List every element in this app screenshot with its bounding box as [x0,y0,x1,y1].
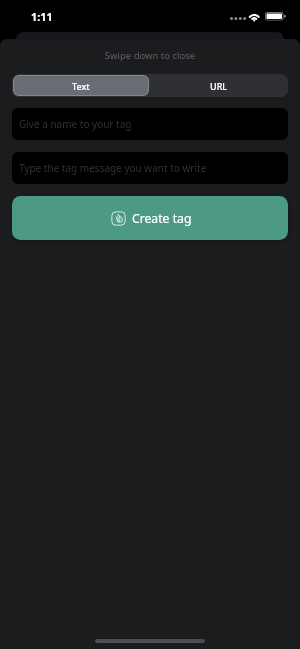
staticText: Create tag [132,210,192,227]
button[interactable]: Create tag [12,196,288,240]
staticText: Text [72,80,90,92]
staticText: Swipe down to close [0,49,300,62]
staticText: Type the tag message you want to write [19,161,207,175]
staticText: URL [210,80,228,92]
staticText: Give a name to your tag [19,117,132,131]
button[interactable]: Text [13,75,149,96]
staticText: 1:11 [31,9,53,24]
button[interactable]: URL [150,74,288,97]
button[interactable]: Give a name to your tag [12,108,288,140]
button[interactable]: Type the tag message you want to write [12,152,288,184]
